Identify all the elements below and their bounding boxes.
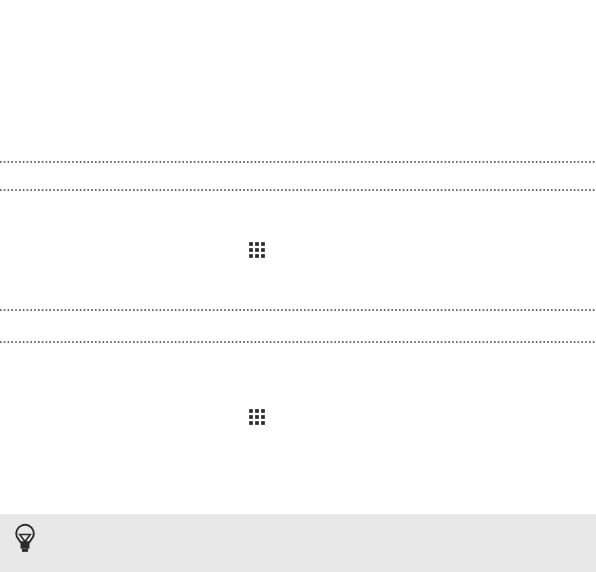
button[interactable]: All apps (248, 408, 266, 426)
button[interactable]: Tip (0, 514, 596, 572)
button[interactable]: Tip (14, 523, 36, 555)
button[interactable]: All apps (248, 241, 266, 259)
